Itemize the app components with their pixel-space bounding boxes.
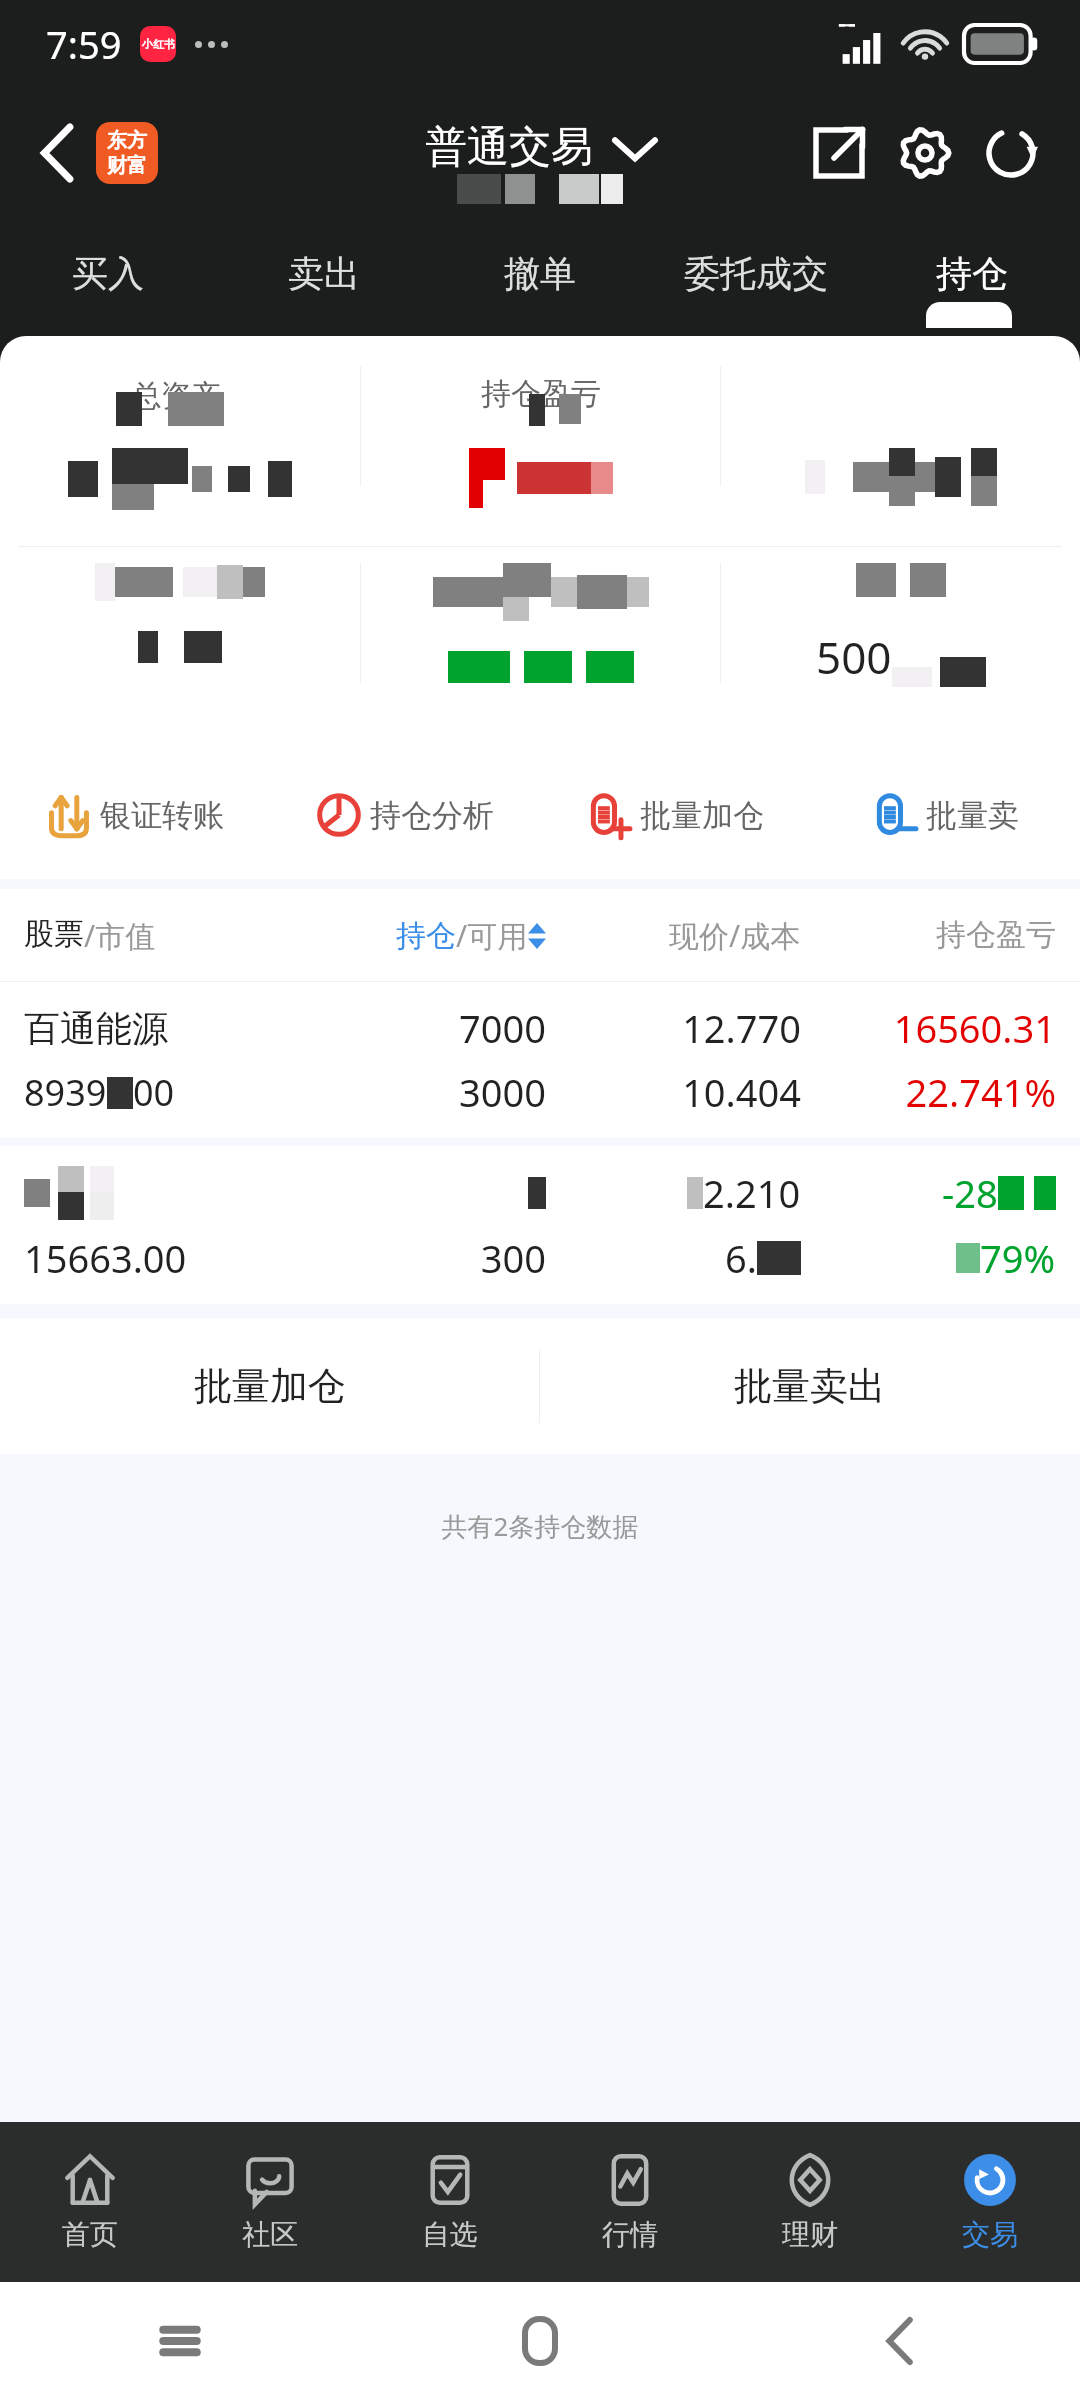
- staticText: 3000: [291, 1066, 546, 1118]
- staticText: 持仓盈亏: [481, 375, 601, 413]
- button[interactable]: [361, 563, 720, 727]
- button[interactable]: 批量加仓: [0, 1318, 539, 1454]
- staticText: 小红书: [142, 37, 175, 51]
- button[interactable]: 首页: [0, 2122, 180, 2282]
- staticText: 00: [133, 1068, 175, 1117]
- button[interactable]: Share: [796, 110, 882, 196]
- button[interactable]: 500: [721, 563, 1080, 727]
- staticText: 首页: [62, 2217, 118, 2252]
- staticText: 7000: [291, 1002, 546, 1054]
- staticText: 8939: [24, 1068, 107, 1117]
- button[interactable]: 卖出: [216, 218, 432, 328]
- button[interactable]: Recents: [0, 2282, 360, 2400]
- staticText: 东方: [107, 128, 147, 153]
- staticText: 批量加仓: [640, 796, 764, 835]
- staticText: 批量卖出: [734, 1362, 886, 1410]
- button[interactable]: 自选: [360, 2122, 540, 2282]
- staticText: 16560.31: [801, 1002, 1056, 1054]
- button[interactable]: 2.210: [0, 1146, 1080, 1304]
- button[interactable]: [0, 563, 360, 727]
- button[interactable]: 批量卖: [810, 751, 1080, 879]
- staticText: 股票: [24, 915, 84, 953]
- button[interactable]: 持仓盈亏: [361, 366, 720, 546]
- staticText: 持仓: [936, 251, 1008, 296]
- staticText: 7:59: [46, 18, 122, 70]
- staticText: 300: [291, 1232, 546, 1284]
- staticText: 持仓: [396, 917, 456, 955]
- staticText: 持仓分析: [370, 796, 494, 835]
- button[interactable]: 持仓分析: [270, 751, 540, 879]
- button[interactable]: Settings: [882, 110, 968, 196]
- button[interactable]: Home: [360, 2282, 720, 2400]
- button[interactable]: 总资产: [0, 366, 360, 546]
- button[interactable]: 撤单: [432, 218, 648, 328]
- button[interactable]: Refresh: [968, 110, 1054, 196]
- staticText: /市值: [84, 915, 156, 956]
- staticText: 现价/成本: [669, 915, 801, 956]
- staticText: 撤单: [504, 251, 576, 296]
- button[interactable]: 交易: [900, 2122, 1080, 2282]
- staticText: 共有2条持仓数据: [0, 1508, 1080, 1544]
- button[interactable]: Back: [20, 115, 96, 191]
- staticText: 批量加仓: [194, 1362, 346, 1410]
- button[interactable]: 批量卖出: [540, 1318, 1080, 1454]
- button[interactable]: 批量加仓: [540, 751, 810, 879]
- staticText: 6.: [725, 1232, 757, 1284]
- staticText: 2.210: [703, 1167, 801, 1219]
- button[interactable]: 东方: [96, 122, 158, 184]
- button[interactable]: Back: [720, 2282, 1080, 2400]
- button[interactable]: 百通能源: [0, 982, 1080, 1138]
- button[interactable]: 理财: [720, 2122, 900, 2282]
- button[interactable]: 买入: [0, 218, 216, 328]
- button[interactable]: 持仓: [291, 915, 546, 956]
- staticText: 百通能源: [24, 1006, 291, 1051]
- button[interactable]: 行情: [540, 2122, 720, 2282]
- staticText: 银证转账: [100, 796, 224, 835]
- button[interactable]: 持仓: [864, 218, 1080, 328]
- staticText: 财富: [107, 153, 147, 178]
- staticText: 普通交易: [425, 121, 593, 174]
- button[interactable]: 社区: [180, 2122, 360, 2282]
- staticText: 12.770: [546, 1002, 801, 1054]
- staticText: 行情: [602, 2217, 658, 2252]
- staticText: 卖出: [288, 251, 360, 296]
- staticText: 10.404: [546, 1066, 801, 1118]
- staticText: 自选: [422, 2217, 478, 2252]
- staticText: 交易: [962, 2217, 1018, 2252]
- button[interactable]: [721, 366, 1080, 546]
- staticText: 委托成交: [684, 251, 828, 296]
- button[interactable]: 银证转账: [0, 751, 270, 879]
- staticText: 批量卖: [926, 796, 1019, 835]
- staticText: 22.741%: [801, 1066, 1056, 1118]
- staticText: 理财: [782, 2217, 838, 2252]
- staticText: 持仓盈亏: [936, 916, 1056, 954]
- staticText: 社区: [242, 2217, 298, 2252]
- staticText: 15663.00: [24, 1232, 291, 1284]
- staticText: -28: [942, 1167, 998, 1219]
- button[interactable]: 委托成交: [648, 218, 864, 328]
- staticText: 79%: [980, 1232, 1056, 1284]
- staticText: /可用: [456, 915, 528, 956]
- staticText: 500: [816, 627, 892, 687]
- staticText: 总资产: [131, 374, 229, 415]
- staticText: 买入: [72, 251, 144, 296]
